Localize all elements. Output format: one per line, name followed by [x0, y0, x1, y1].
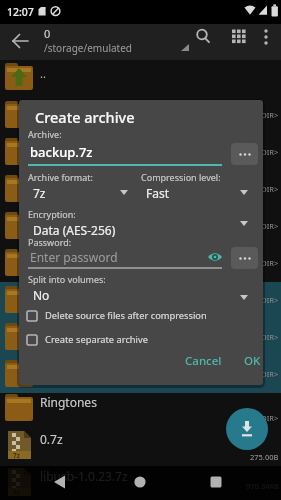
button[interactable] — [226, 408, 268, 450]
button[interactable] — [28, 220, 257, 240]
button[interactable] — [192, 26, 214, 48]
button[interactable] — [203, 470, 229, 494]
staticText: <DIR> — [257, 147, 279, 157]
staticText: Split into volumes: — [28, 273, 106, 285]
staticText: 7z — [13, 451, 20, 460]
button[interactable] — [28, 138, 222, 163]
button[interactable] — [231, 143, 258, 165]
button[interactable] — [231, 247, 258, 269]
staticText: OK — [244, 353, 261, 369]
staticText: <DIR> — [257, 332, 279, 342]
button[interactable] — [0, 393, 281, 430]
staticText: libusb-1.0.23.7z — [40, 468, 128, 484]
button[interactable]: OK — [235, 349, 263, 373]
staticText: backup.7z — [30, 143, 93, 161]
button[interactable] — [0, 467, 281, 500]
staticText: Cancel — [185, 353, 222, 369]
button[interactable] — [28, 183, 153, 203]
button[interactable] — [28, 246, 222, 268]
button[interactable] — [48, 470, 74, 494]
staticText: 12:07 — [7, 5, 34, 19]
staticText: <DIR> — [257, 258, 279, 268]
button[interactable] — [0, 430, 281, 467]
button[interactable]: Delete source files after compression — [26, 309, 207, 322]
staticText: <DIR> — [257, 110, 279, 120]
button[interactable]: Create separate archive — [26, 333, 148, 346]
button[interactable] — [127, 470, 153, 494]
staticText: Archive format: — [28, 171, 93, 183]
staticText: Archive: — [28, 128, 62, 140]
staticText: No — [33, 287, 50, 303]
staticText: 0.7z — [40, 431, 63, 447]
staticText: 970.34KB — [246, 481, 279, 491]
staticText: <DIR> — [257, 184, 279, 194]
staticText: <DIR> — [257, 369, 279, 379]
staticText: Create archive — [35, 107, 135, 127]
staticText: <DIR> — [257, 413, 279, 423]
staticText: /storage/emulated — [44, 41, 132, 55]
button[interactable] — [8, 28, 34, 54]
button[interactable] — [141, 183, 257, 203]
staticText: Password: — [28, 236, 72, 248]
button[interactable] — [205, 248, 225, 266]
button[interactable] — [228, 26, 250, 48]
staticText: .. — [40, 66, 46, 81]
staticText: Enter password — [30, 249, 118, 265]
staticText: Delete source files after compression — [45, 309, 207, 322]
staticText: 7z — [33, 185, 46, 201]
staticText: Create separate archive — [45, 333, 148, 346]
staticText: 0 — [44, 26, 51, 41]
staticText: Ringtones — [40, 394, 97, 410]
button[interactable] — [256, 26, 276, 48]
staticText: Fast — [146, 185, 170, 201]
staticText: 275.00B — [250, 452, 279, 462]
staticText: 7z — [13, 488, 20, 497]
staticText: <DIR> — [257, 295, 279, 305]
staticText: Data (AES-256) — [33, 222, 116, 238]
button[interactable]: Cancel — [179, 349, 227, 373]
button[interactable] — [0, 60, 281, 97]
staticText: Encryption: — [28, 208, 76, 220]
staticText: Compression level: — [141, 171, 221, 183]
staticText: <DIR> — [257, 221, 279, 231]
button[interactable] — [28, 285, 257, 305]
